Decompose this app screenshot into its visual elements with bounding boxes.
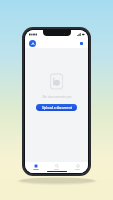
button[interactable]: Menu [78,40,84,46]
button[interactable]: Upload a document [36,104,77,111]
button[interactable]: Profile [29,40,36,47]
button[interactable]: Home [25,162,46,171]
staticText: No documents yet [42,94,72,99]
staticText: Upload a document [42,106,72,110]
button[interactable]: Library [67,162,88,171]
button[interactable]: Search [46,162,67,171]
